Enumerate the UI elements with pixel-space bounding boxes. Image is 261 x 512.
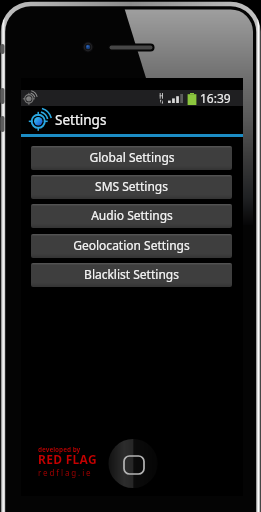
staticText: redflag.ie [38, 467, 93, 478]
button[interactable]: Blacklist Settings [31, 263, 232, 287]
staticText: Settings [55, 111, 107, 129]
staticText: Blacklist Settings [84, 266, 179, 282]
staticText: Audio Settings [91, 207, 173, 223]
button[interactable]: Global Settings [31, 146, 232, 170]
button[interactable]: Audio Settings [31, 204, 232, 228]
staticText: SMS Settings [95, 178, 168, 194]
staticText: RED FLAG [38, 451, 97, 467]
button[interactable]: SMS Settings [31, 175, 232, 199]
staticText: Geolocation Settings [73, 237, 190, 253]
staticText: 16:39 [200, 90, 231, 106]
button[interactable]: Geolocation Settings [31, 234, 232, 258]
staticText: developed by [38, 445, 81, 454]
staticText: Global Settings [89, 149, 175, 165]
